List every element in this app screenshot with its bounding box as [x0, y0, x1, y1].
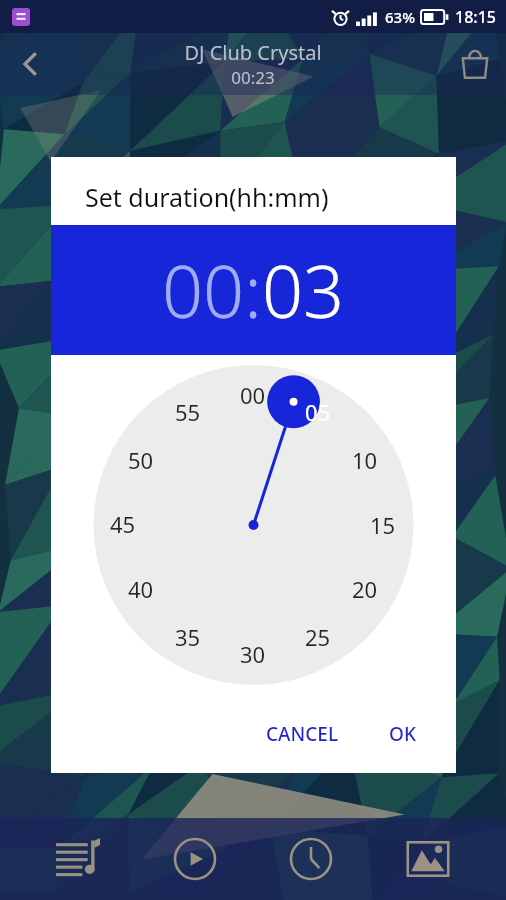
staticText: 35	[175, 622, 201, 652]
staticText: 45	[110, 509, 136, 539]
staticText: 25	[305, 622, 331, 652]
button[interactable]: Back	[0, 33, 62, 95]
staticText: 55	[175, 397, 201, 427]
button[interactable]: Timer	[273, 821, 349, 897]
staticText: OK	[389, 721, 416, 747]
staticText: 20	[352, 574, 378, 604]
button[interactable]: Playlist	[40, 821, 116, 897]
staticText: CANCEL	[266, 721, 339, 747]
button[interactable]: OK	[377, 713, 428, 755]
button[interactable]: 00:	[162, 241, 262, 339]
button[interactable]: 03	[262, 241, 345, 339]
staticText: 05	[305, 397, 331, 427]
staticText: 00:23	[231, 66, 275, 89]
staticText: 30	[240, 639, 266, 669]
staticText: 10	[352, 445, 378, 475]
staticText: 00	[240, 380, 266, 410]
button[interactable]: CANCEL	[254, 713, 351, 755]
button[interactable]: 00	[51, 355, 456, 695]
button[interactable]: Play	[157, 821, 233, 897]
staticText: 50	[128, 445, 154, 475]
button[interactable]: Shop	[444, 33, 506, 95]
staticText: 15	[370, 510, 396, 540]
staticText: 18:15	[455, 6, 496, 28]
staticText: DJ Club Crystal	[184, 39, 322, 66]
staticText: 40	[128, 574, 154, 604]
staticText: 63%	[385, 7, 415, 27]
staticText: Set duration(hh:mm)	[85, 180, 329, 214]
button[interactable]: Gallery	[390, 821, 466, 897]
